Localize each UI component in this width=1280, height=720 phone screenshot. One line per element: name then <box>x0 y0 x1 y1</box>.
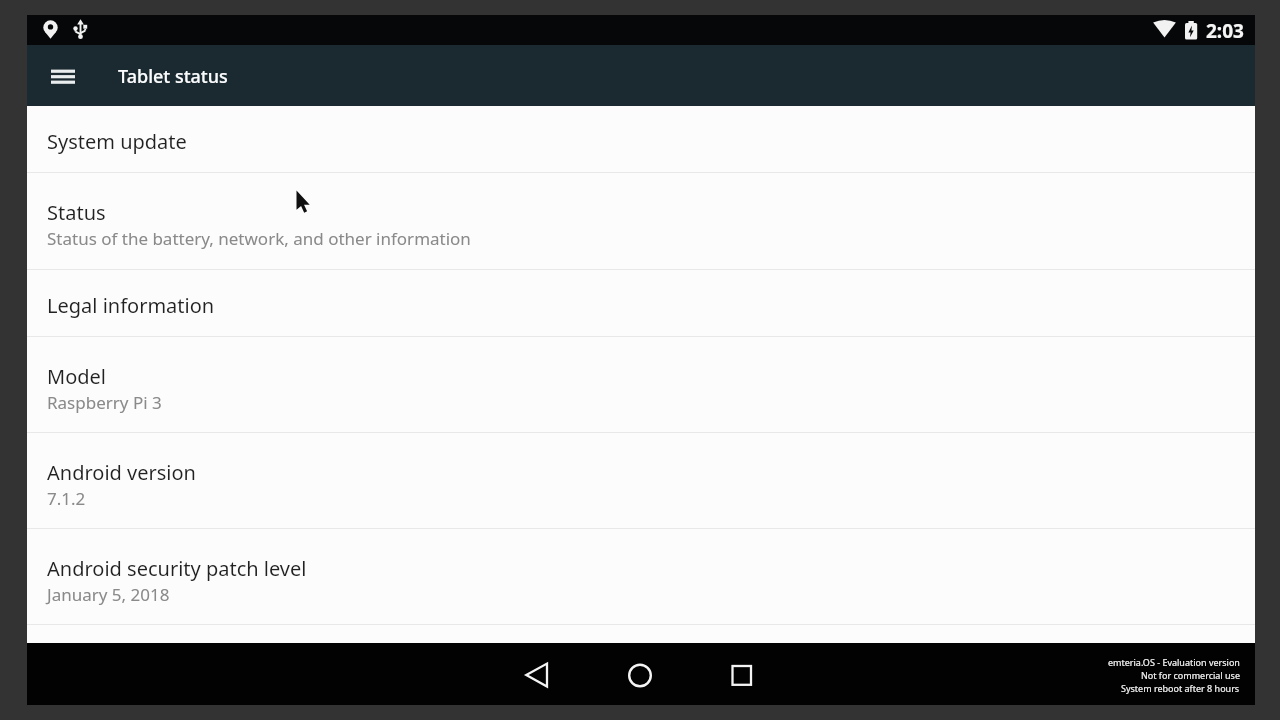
button[interactable]: Model <box>27 337 1255 433</box>
button[interactable] <box>619 655 661 695</box>
staticText: Status <box>47 199 106 226</box>
staticText: Android security patch level <box>47 555 307 582</box>
staticText: System reboot after 8 hours <box>1121 682 1240 694</box>
button[interactable]: Android version <box>27 433 1255 529</box>
button[interactable]: Android security patch level <box>27 529 1255 625</box>
button[interactable] <box>516 655 558 695</box>
staticText: Not for commercial use <box>1141 669 1240 681</box>
staticText: Status of the battery, network, and othe… <box>47 227 471 250</box>
button[interactable]: Legal information <box>27 270 1255 337</box>
staticText: Tablet status <box>118 64 228 89</box>
staticText: System update <box>47 128 187 155</box>
button[interactable] <box>721 655 763 695</box>
staticText: Legal information <box>47 292 215 319</box>
staticText: Android version <box>47 459 196 486</box>
staticText: January 5, 2018 <box>47 583 170 606</box>
button[interactable] <box>43 67 83 91</box>
staticText: Model <box>47 363 106 390</box>
staticText: emteria.OS - Evaluation version <box>1108 656 1240 668</box>
staticText: 2:03 <box>1206 18 1244 44</box>
button[interactable]: System update <box>27 106 1255 173</box>
staticText: Raspberry Pi 3 <box>47 391 162 414</box>
button[interactable]: Status <box>27 173 1255 270</box>
staticText: 7.1.2 <box>47 487 86 510</box>
